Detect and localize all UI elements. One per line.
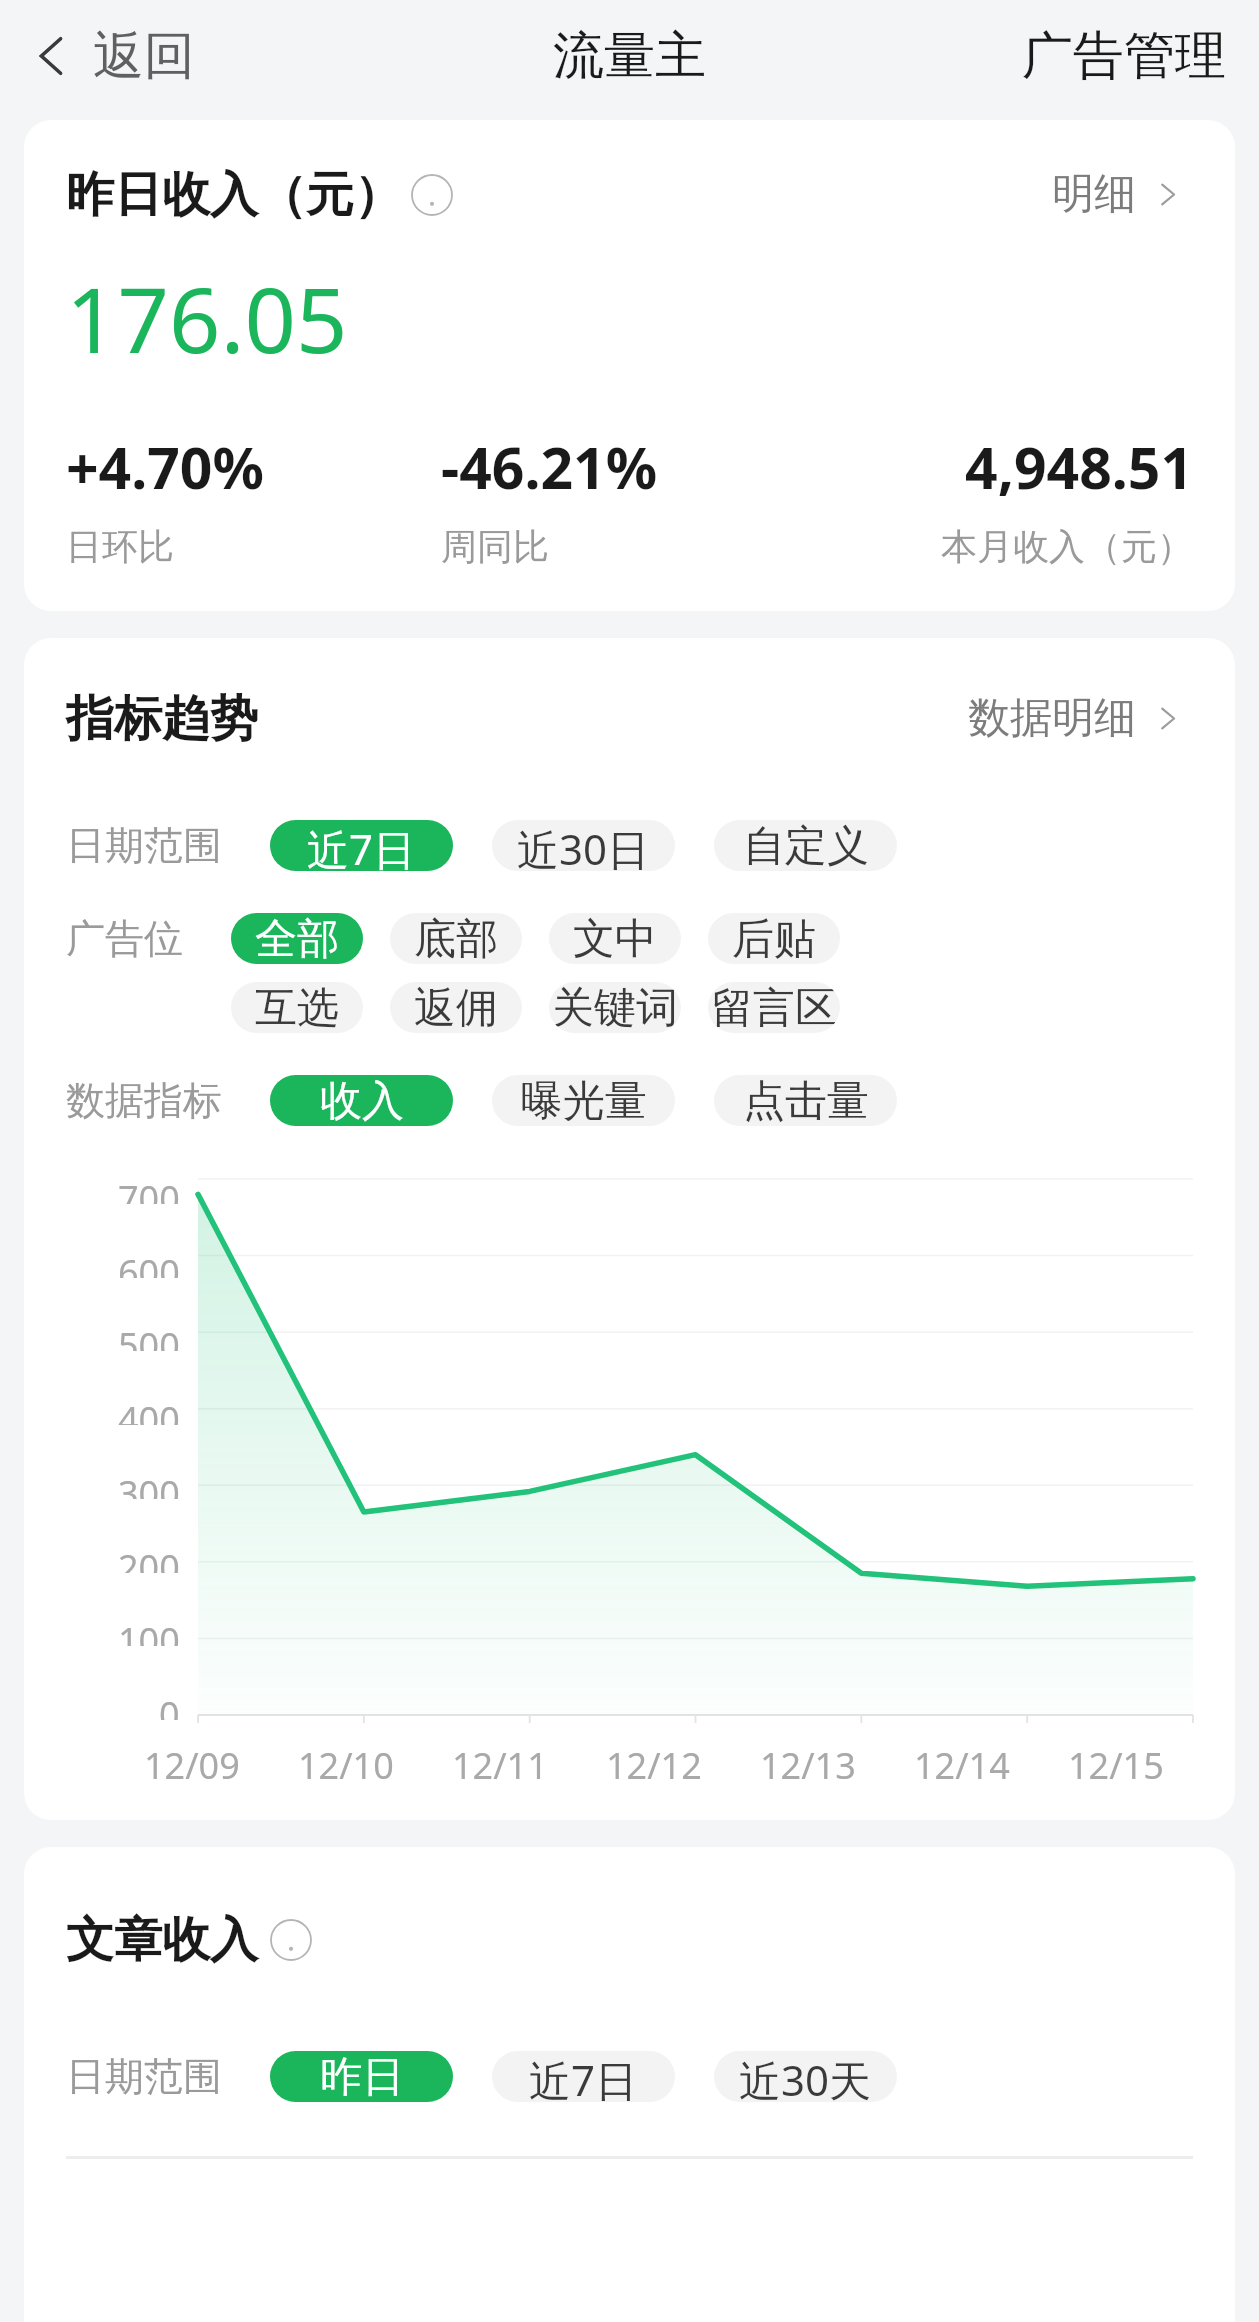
- button[interactable]: 明细: [1043, 159, 1193, 230]
- other: Back: [27, 32, 75, 80]
- staticText: 返回: [93, 24, 195, 88]
- staticText: 近30日: [517, 820, 650, 871]
- staticText: 12/15: [1068, 1741, 1164, 1790]
- staticText: 12/11: [452, 1741, 548, 1790]
- other: Help: [270, 1919, 312, 1961]
- staticText: 4,948.51: [817, 428, 1193, 506]
- staticText: 200: [118, 1543, 180, 1573]
- button[interactable]: 全部: [231, 913, 363, 964]
- staticText: 300: [118, 1469, 180, 1499]
- button[interactable]: 后贴: [708, 913, 840, 964]
- staticText: 日期范围: [66, 821, 222, 870]
- staticText: 关键词: [552, 982, 678, 1033]
- button[interactable]: 近7日: [492, 2051, 675, 2102]
- staticText: 12/13: [760, 1741, 856, 1790]
- button[interactable]: 底部: [390, 913, 522, 964]
- button[interactable]: 收入: [270, 1075, 453, 1126]
- staticText: 100: [118, 1616, 180, 1646]
- staticText: 近7日: [529, 2051, 638, 2102]
- staticText: 自定义: [743, 820, 869, 871]
- staticText: 176.05: [66, 257, 348, 380]
- staticText: 昨日: [320, 2051, 404, 2102]
- staticText: 12/12: [606, 1741, 702, 1790]
- staticText: 曝光量: [521, 1075, 647, 1126]
- staticText: 0: [159, 1690, 180, 1720]
- staticText: 本月收入（元）: [817, 524, 1193, 569]
- staticText: 文中: [573, 913, 657, 964]
- button[interactable]: 近7日: [270, 820, 453, 871]
- staticText: 明细: [1052, 168, 1136, 221]
- staticText: 12/10: [298, 1741, 394, 1790]
- staticText: 周同比: [441, 524, 817, 569]
- button[interactable]: 文中: [549, 913, 681, 964]
- staticText: 600: [118, 1248, 180, 1278]
- button[interactable]: 留言区: [708, 982, 840, 1033]
- staticText: 收入: [320, 1075, 404, 1126]
- staticText: 12/09: [144, 1741, 240, 1790]
- button[interactable]: 数据明细: [959, 683, 1193, 754]
- staticText: 流量主: [553, 24, 706, 88]
- button[interactable]: 广告管理: [1010, 12, 1238, 100]
- staticText: 点击量: [743, 1075, 869, 1126]
- staticText: 数据指标: [66, 1076, 222, 1125]
- staticText: 日环比: [66, 524, 441, 569]
- button[interactable]: Back: [12, 9, 210, 103]
- button[interactable]: 曝光量: [492, 1075, 675, 1126]
- staticText: 近7日: [307, 820, 416, 871]
- staticText: 广告管理: [1022, 24, 1226, 88]
- staticText: 留言区: [711, 982, 837, 1033]
- staticText: -46.21%: [441, 428, 817, 506]
- button[interactable]: 返佣: [390, 982, 522, 1033]
- staticText: 昨日收入（元）: [66, 165, 402, 225]
- staticText: +4.70%: [66, 428, 441, 506]
- other: Help: [411, 174, 453, 216]
- staticText: 文章收入: [66, 1910, 258, 1970]
- staticText: 广告位: [66, 914, 183, 963]
- staticText: 700: [118, 1174, 180, 1204]
- button[interactable]: 自定义: [714, 820, 897, 871]
- staticText: 互选: [255, 982, 339, 1033]
- staticText: 指标趋势: [66, 689, 258, 749]
- staticText: 日期范围: [66, 2052, 222, 2101]
- button[interactable]: 近30日: [492, 820, 675, 871]
- button[interactable]: 关键词: [549, 982, 681, 1033]
- button[interactable]: 近30天: [714, 2051, 897, 2102]
- staticText: 数据明细: [968, 692, 1136, 745]
- staticText: 返佣: [414, 982, 498, 1033]
- staticText: 底部: [414, 913, 498, 964]
- button[interactable]: 昨日: [270, 2051, 453, 2102]
- button[interactable]: 点击量: [714, 1075, 897, 1126]
- staticText: 500: [118, 1321, 180, 1351]
- staticText: 后贴: [732, 913, 816, 964]
- staticText: 12/14: [914, 1741, 1010, 1790]
- staticText: 全部: [255, 913, 339, 964]
- button[interactable]: 互选: [231, 982, 363, 1033]
- staticText: 400: [118, 1395, 180, 1425]
- staticText: 近30天: [739, 2051, 872, 2102]
